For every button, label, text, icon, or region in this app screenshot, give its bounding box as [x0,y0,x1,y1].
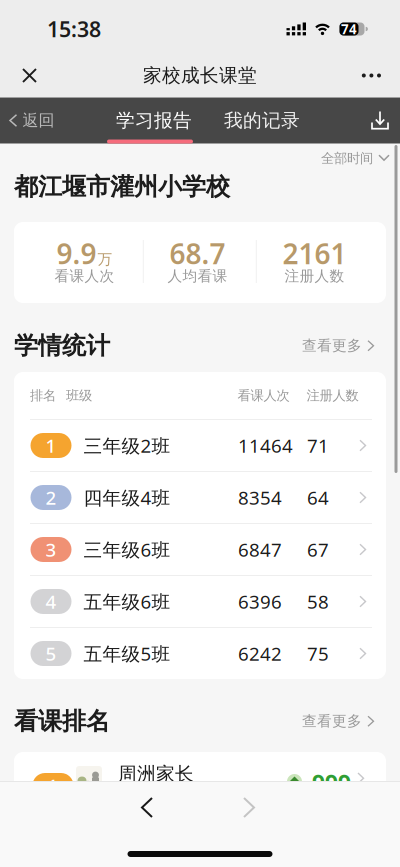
staticText: 3 [45,537,56,562]
staticText: 6396 [238,589,282,614]
staticText: 74 [341,20,357,38]
staticText: 看课人次 [237,387,289,404]
staticText: 6847 [238,537,282,562]
staticText: 11464 [238,433,293,458]
button[interactable]: 1 [14,420,386,471]
staticText: 2161 [282,235,346,272]
button[interactable]: Back [0,111,54,130]
staticText: 学习报告 [116,109,192,132]
button[interactable]: 1 [14,752,386,862]
button[interactable]: More [352,67,400,77]
staticText: 1 [47,773,58,798]
staticText: 9.9 [56,235,96,272]
staticText: 58 [307,589,329,614]
staticText: 四年级4班 [83,485,170,510]
button[interactable]: Close [0,62,47,83]
staticText: 学情统计 [14,331,110,360]
button[interactable]: 我的记录 [224,109,300,132]
staticText: 71 [307,433,329,458]
staticText: 都江堰市灌州小学校 [14,172,230,201]
staticText: 查看更多 [302,712,362,730]
button[interactable]: Next page [217,785,281,830]
staticText: 看课人次 [54,267,114,285]
staticText: 注册人数 [306,387,358,404]
staticText: 看课排名 [14,706,110,736]
staticText: 五年级6班 [83,589,170,614]
staticText: 查看更多 [302,337,362,355]
staticText: 五年级5班 [83,641,170,666]
staticText: 68.7 [169,235,225,272]
button[interactable]: 3 [14,524,386,575]
staticText: 75 [307,641,329,666]
staticText: 三年级2班 [83,433,170,458]
staticText: 全部时间 [321,150,373,166]
staticText: 999 [312,768,351,798]
staticText: 家校成长课堂 [143,64,257,87]
button[interactable]: 5 [14,628,386,679]
staticText: 67 [307,537,329,562]
staticText: 4 [45,589,56,614]
button[interactable]: 查看更多 [302,337,386,355]
staticText: 6242 [238,641,282,666]
button[interactable]: Download report [363,111,400,129]
staticText: 15:38 [47,15,101,43]
staticText: 64 [307,485,329,510]
staticText: 我的记录 [224,109,300,132]
staticText: 返回 [22,111,54,130]
staticText: 周洲家长 [118,762,194,785]
button[interactable]: 全部时间 [321,150,390,166]
staticText: 1 [45,433,56,458]
button[interactable]: 2 [14,472,386,523]
button[interactable]: 学习报告 [116,109,192,132]
staticText: 班级 [66,387,92,404]
staticText: 2 [45,485,56,510]
button[interactable]: Previous page [115,785,179,830]
staticText: 注册人数 [284,267,344,285]
staticText: 5 [45,641,56,666]
staticText: 8354 [238,485,282,510]
button[interactable]: 4 [14,576,386,627]
staticText: 万 [97,250,112,268]
staticText: 三年级6班 [83,537,170,562]
staticText: 排名 [30,387,56,404]
button[interactable]: 查看更多 [302,712,386,730]
staticText: 人均看课 [167,267,227,285]
